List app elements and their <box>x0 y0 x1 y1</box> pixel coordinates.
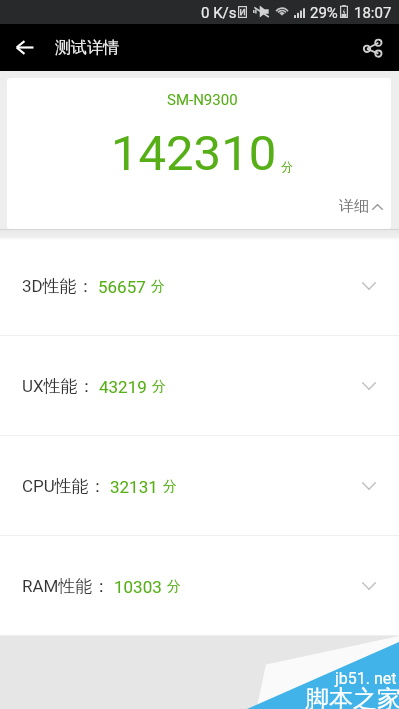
staticText: 0 K/s <box>201 4 237 22</box>
button[interactable]: 详细 <box>339 197 383 216</box>
staticText: 10303 <box>114 577 162 597</box>
staticText: CPU性能： <box>22 476 106 497</box>
staticText: 分 <box>163 478 177 496</box>
button[interactable]: 3D性能： <box>0 236 399 336</box>
staticText: 详细 <box>339 197 369 216</box>
staticText: 3D性能： <box>22 276 94 297</box>
staticText: RAM性能： <box>22 576 110 597</box>
button[interactable]: Share <box>354 29 391 66</box>
staticText: 分 <box>151 278 165 296</box>
staticText: 18:07 <box>354 4 392 22</box>
staticText: 分 <box>167 578 181 596</box>
staticText: 43219 <box>99 377 147 397</box>
staticText: 分 <box>281 159 293 174</box>
staticText: SM-N9300 <box>167 91 238 109</box>
button[interactable]: CPU性能： <box>0 436 399 536</box>
staticText: 29% <box>310 4 338 22</box>
staticText: 测试详情 <box>55 38 119 58</box>
staticText: jb51. net <box>335 669 397 688</box>
button[interactable]: RAM性能： <box>0 536 399 636</box>
button[interactable]: UX性能： <box>0 336 399 436</box>
staticText: 分 <box>152 378 166 396</box>
staticText: 脚本之家 <box>305 684 399 709</box>
button[interactable]: Back <box>6 29 43 66</box>
staticText: 32131 <box>110 477 158 497</box>
staticText: UX性能： <box>22 376 95 397</box>
staticText: 56657 <box>98 277 146 297</box>
staticText: 142310 <box>111 125 277 182</box>
